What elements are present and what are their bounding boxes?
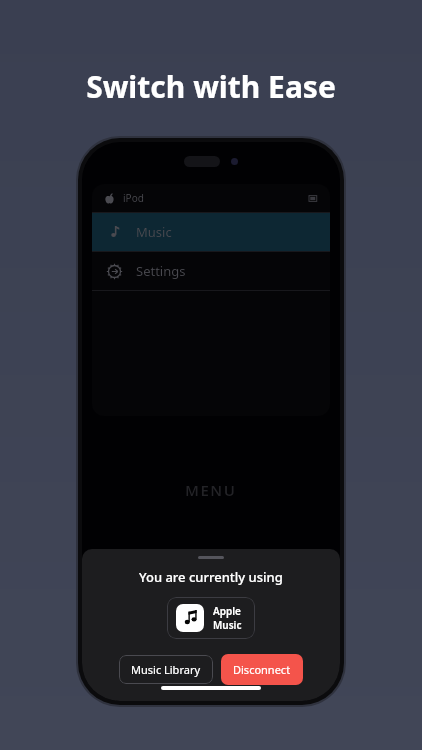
- button[interactable]: Music Library: [119, 655, 213, 684]
- staticText: Disconnect: [233, 662, 291, 677]
- staticText: iPod: [123, 191, 144, 205]
- staticText: Music: [213, 618, 242, 632]
- staticText: MENU: [185, 480, 237, 500]
- button[interactable]: Disconnect: [221, 654, 303, 685]
- other: Apple Music: [182, 610, 199, 627]
- staticText: You are currently using: [139, 568, 283, 586]
- button[interactable]: Music: [92, 213, 330, 251]
- staticText: Apple: [213, 604, 241, 618]
- staticText: Settings: [136, 262, 186, 280]
- staticText: Music Library: [131, 662, 201, 677]
- other: Apple: [104, 193, 115, 204]
- staticText: Music: [136, 223, 172, 241]
- staticText: Switch with Ease: [0, 66, 422, 107]
- button[interactable]: Settings: [92, 252, 330, 290]
- button[interactable]: Apple Music: [167, 597, 255, 639]
